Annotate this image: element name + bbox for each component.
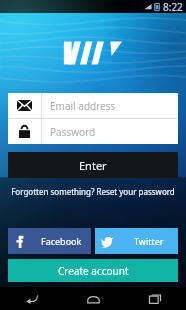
button[interactable]: Home (62, 287, 124, 310)
button[interactable]: Enter (8, 152, 178, 178)
button[interactable]: Create account (8, 259, 178, 282)
staticText: Twitter (134, 235, 164, 247)
staticText: Create account (58, 264, 129, 278)
button[interactable]: Email (8, 93, 178, 118)
staticText: Facebook (41, 235, 82, 247)
staticText: 8:22 (163, 0, 183, 13)
button[interactable]: Facebook (8, 228, 91, 254)
button[interactable]: Password (8, 119, 178, 144)
button[interactable]: Twitter (95, 228, 178, 254)
staticText: Password (50, 125, 96, 139)
staticText: Forgotten something? Reset your password (11, 186, 175, 197)
button[interactable]: Forgotten something? Reset your password (0, 186, 186, 197)
button[interactable]: Back (0, 287, 62, 310)
other: Password (8, 119, 41, 144)
staticText: Enter (79, 158, 107, 173)
staticText: Email address (50, 99, 116, 113)
other: Email (8, 93, 41, 118)
button[interactable]: Recents (124, 287, 186, 310)
